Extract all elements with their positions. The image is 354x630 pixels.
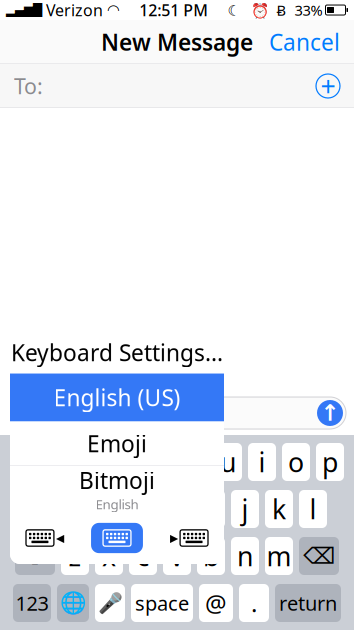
staticText: u [220, 444, 236, 480]
staticText: c [136, 538, 149, 574]
staticText: o [288, 444, 304, 480]
staticText: k [272, 491, 286, 527]
button[interactable]: c [129, 537, 157, 575]
button[interactable]: return [275, 584, 341, 622]
button[interactable]: e [78, 443, 106, 481]
button[interactable]: Cancel [255, 17, 354, 67]
staticText: e [84, 444, 99, 480]
staticText: ☾ ⏰ Ƀ 33% [227, 0, 322, 20]
button[interactable]: Send [317, 400, 343, 426]
button[interactable]: k [265, 490, 293, 528]
staticText: i [258, 444, 265, 480]
button[interactable]: t [146, 443, 174, 481]
button[interactable]: Keyboard Settings... [10, 331, 224, 373]
button[interactable]: z [61, 537, 89, 575]
staticText: . [251, 587, 257, 619]
staticText: r [120, 444, 131, 480]
button[interactable]: Next keyboard [57, 584, 89, 622]
staticText: x [102, 538, 116, 574]
staticText: English [95, 495, 138, 513]
staticText: j [241, 491, 248, 527]
staticText: Cancel [269, 27, 340, 57]
staticText: Bitmoji [79, 465, 155, 495]
staticText: 🌐 [59, 591, 86, 615]
staticText: 123 [15, 590, 48, 616]
button[interactable]: @ [199, 584, 233, 622]
button[interactable]: i [248, 443, 276, 481]
staticText: n [237, 538, 253, 574]
button[interactable]: r [112, 443, 140, 481]
button[interactable]: Next keyboard [164, 525, 214, 551]
button[interactable]: h [197, 490, 225, 528]
staticText: 🎤 [97, 592, 122, 614]
staticText: m [266, 538, 291, 574]
staticText: ▶ [170, 532, 178, 544]
staticText: Verizon [42, 0, 107, 21]
button[interactable]: n [231, 537, 259, 575]
button[interactable]: 123 [13, 584, 51, 622]
button[interactable]: Current keyboard [91, 523, 143, 553]
button[interactable]: Add contact [316, 74, 340, 98]
button[interactable]: l [299, 490, 327, 528]
button[interactable]: u [214, 443, 242, 481]
staticText: b [203, 538, 219, 574]
staticText: l [309, 491, 316, 527]
button[interactable]: d [95, 490, 123, 528]
button[interactable]: Bitmoji [10, 466, 224, 512]
staticText: Emoji [87, 428, 147, 458]
button[interactable]: English (US) [10, 373, 224, 421]
button[interactable]: b [197, 537, 225, 575]
button[interactable]: Emoji [10, 421, 224, 465]
staticText: f [138, 491, 147, 527]
staticText: p [322, 444, 338, 480]
button[interactable]: f [129, 490, 157, 528]
button[interactable]: Shift [15, 537, 55, 575]
button[interactable]: Delete [299, 537, 339, 575]
staticText: ⌫ [303, 543, 335, 569]
staticText: return [279, 590, 337, 616]
button[interactable]: m [265, 537, 293, 575]
staticText: ↑ [320, 400, 339, 426]
staticText: ▂▄▆█ [6, 3, 42, 17]
staticText: ◀ [56, 532, 64, 544]
staticText: v [170, 538, 184, 574]
button[interactable]: v [163, 537, 191, 575]
staticText: Keyboard Settings... [11, 337, 223, 367]
button[interactable]: o [282, 443, 310, 481]
button[interactable]: Dictate [95, 584, 125, 622]
button[interactable]: x [95, 537, 123, 575]
staticText: + [320, 68, 335, 104]
staticText: To: [14, 72, 43, 100]
button[interactable]: space [131, 584, 193, 622]
button[interactable]: j [231, 490, 259, 528]
staticText: ⇧ [25, 542, 45, 570]
button[interactable]: Previous keyboard [20, 525, 70, 551]
button[interactable]: p [316, 443, 344, 481]
staticText: English (US) [53, 382, 180, 412]
staticText: space [135, 590, 189, 616]
staticText: 12:51 PM [139, 0, 208, 21]
staticText: New Message [101, 27, 253, 57]
staticText: ◠ [107, 2, 120, 18]
staticText: d [101, 491, 117, 527]
staticText: @ [205, 587, 227, 619]
staticText: z [68, 538, 81, 574]
button[interactable]: . [239, 584, 269, 622]
